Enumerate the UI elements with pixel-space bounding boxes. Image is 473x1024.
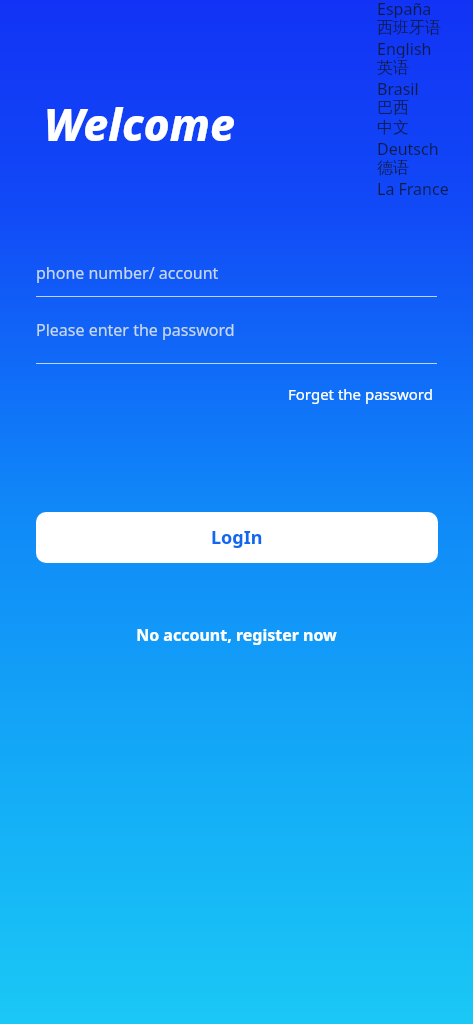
staticText: Deutsch: [377, 138, 439, 158]
button[interactable]: phone number/ account: [36, 250, 437, 296]
button[interactable]: English: [377, 38, 432, 58]
button[interactable]: 英语: [377, 58, 409, 78]
staticText: 中文: [377, 118, 409, 138]
staticText: 英语: [377, 58, 409, 78]
staticText: España: [377, 0, 432, 18]
staticText: La France: [377, 178, 449, 198]
button[interactable]: LogIn: [36, 512, 438, 563]
button[interactable]: Please enter the password: [36, 297, 437, 363]
staticText: 巴西: [377, 98, 409, 118]
staticText: Welcome: [44, 94, 236, 154]
button[interactable]: 巴西: [377, 98, 409, 118]
button[interactable]: España: [377, 0, 432, 18]
staticText: Brasil: [377, 78, 419, 98]
button[interactable]: 西班牙语: [377, 18, 441, 38]
button[interactable]: Brasil: [377, 78, 419, 98]
staticText: 西班牙语: [377, 18, 441, 38]
button[interactable]: 德语: [377, 158, 409, 178]
staticText: 德语: [377, 158, 409, 178]
staticText: LogIn: [211, 525, 263, 550]
button[interactable]: 中文: [377, 118, 409, 138]
button[interactable]: Deutsch: [377, 138, 439, 158]
staticText: Forget the password: [288, 384, 433, 404]
staticText: No account, register now: [136, 624, 337, 646]
button[interactable]: Forget the password: [284, 380, 437, 408]
staticText: phone number/ account: [36, 262, 219, 284]
staticText: Please enter the password: [36, 319, 235, 341]
staticText: English: [377, 38, 432, 58]
button[interactable]: La France: [377, 178, 449, 198]
button[interactable]: No account, register now: [0, 620, 473, 650]
